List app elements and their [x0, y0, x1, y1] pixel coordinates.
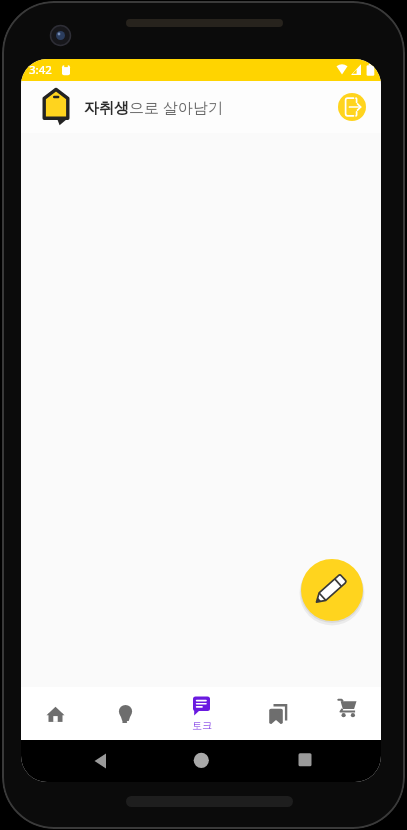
button[interactable]: [301, 559, 363, 621]
staticText: 3:42: [29, 62, 52, 78]
button[interactable]: [99, 687, 152, 740]
staticText: 토크: [192, 719, 212, 732]
button[interactable]: [251, 687, 304, 740]
button[interactable]: [29, 687, 82, 740]
button[interactable]: 토크: [175, 687, 228, 740]
button[interactable]: [321, 687, 374, 740]
button[interactable]: [338, 93, 366, 121]
staticText: 자취생으로 살아남기: [84, 97, 223, 117]
